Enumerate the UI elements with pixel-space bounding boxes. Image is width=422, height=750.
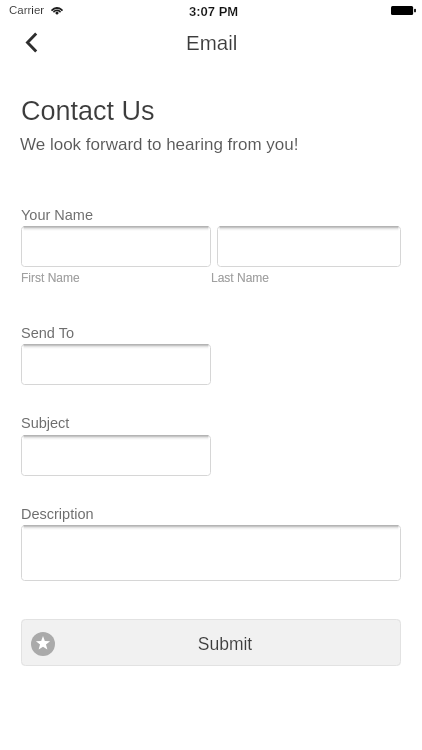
- button[interactable]: [21, 344, 211, 385]
- button[interactable]: [217, 226, 401, 267]
- button[interactable]: [21, 226, 211, 267]
- button[interactable]: [21, 525, 401, 581]
- staticText: Submit: [47, 634, 401, 654]
- staticText: Last Name: [211, 271, 270, 284]
- staticText: Subject: [21, 415, 70, 431]
- button[interactable]: Back: [16, 29, 48, 61]
- button[interactable]: Submit: [21, 619, 401, 666]
- button[interactable]: [21, 435, 211, 476]
- staticText: Your Name: [21, 207, 94, 223]
- staticText: 3:07 PM: [189, 4, 239, 19]
- staticText: First Name: [21, 271, 80, 284]
- staticText: We look forward to hearing from you!: [20, 135, 299, 154]
- staticText: Description: [21, 506, 94, 522]
- staticText: Contact Us: [21, 96, 155, 126]
- staticText: Carrier: [9, 4, 45, 17]
- staticText: Email: [186, 31, 238, 54]
- staticText: Send To: [21, 325, 74, 341]
